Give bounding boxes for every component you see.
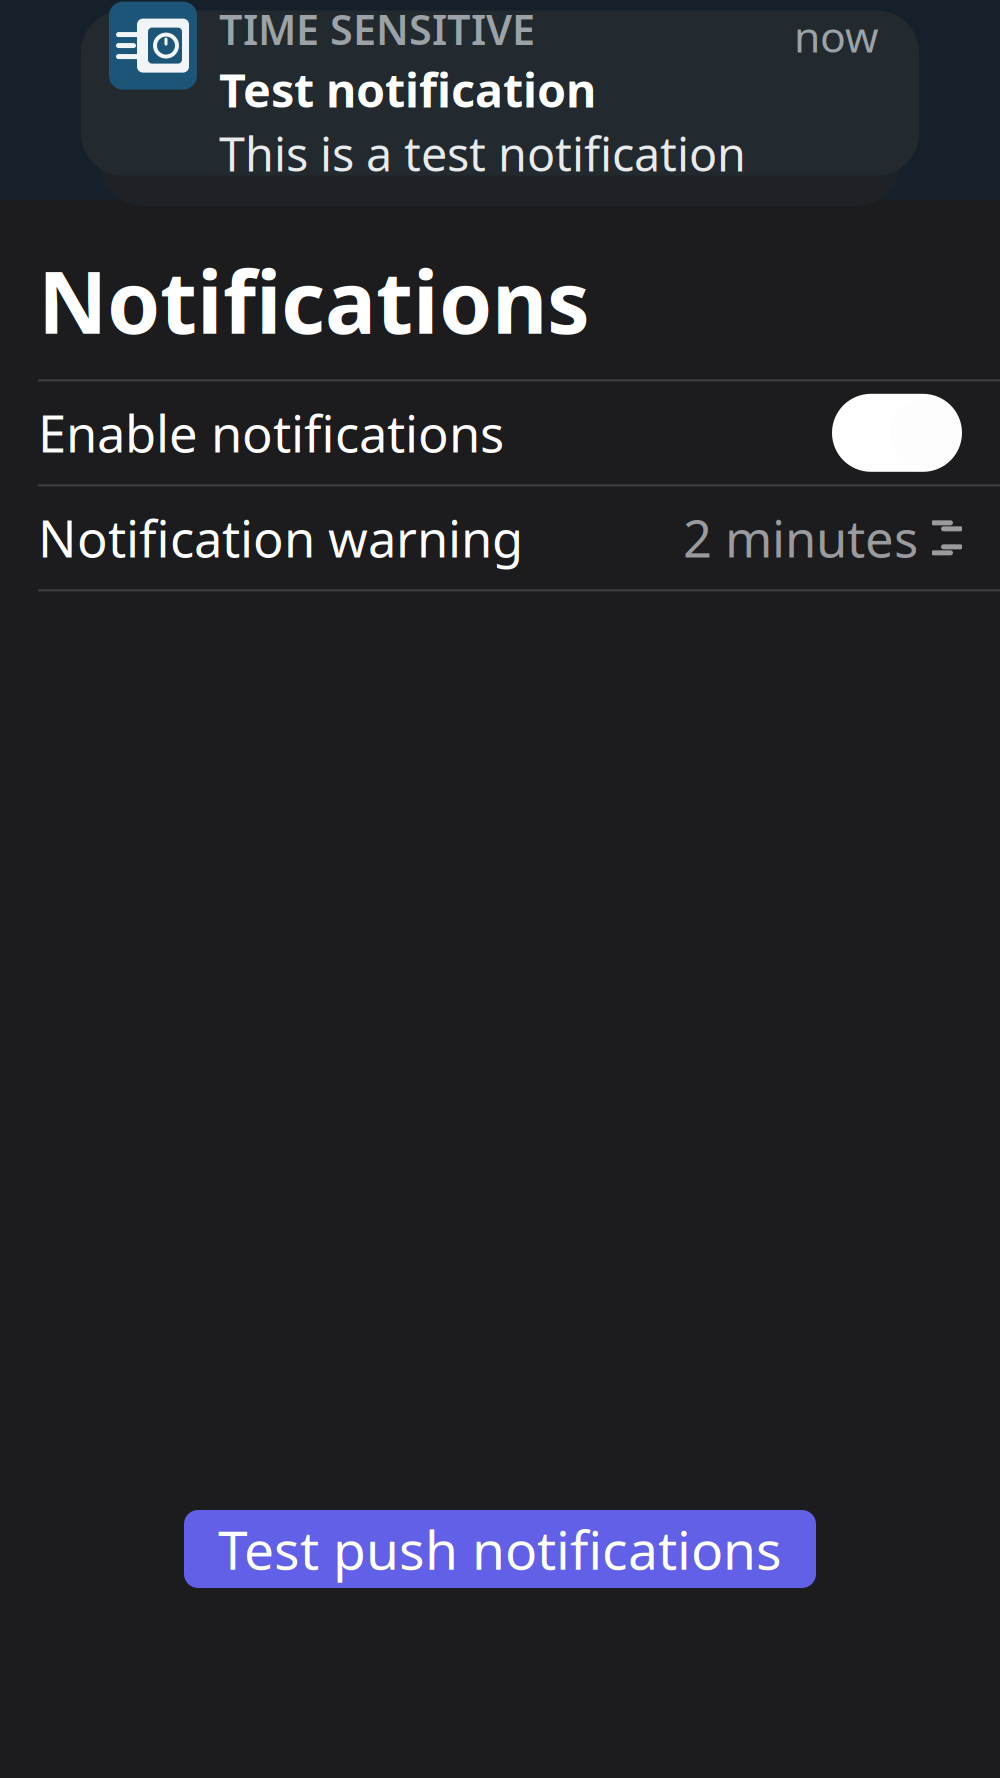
staticText: TIME SENSITIVE	[219, 2, 535, 56]
button[interactable]: Test push notifications	[184, 1510, 816, 1588]
button[interactable]: Notification warning	[0, 486, 1000, 589]
staticText: now	[794, 8, 879, 64]
staticText: This is a test notification	[219, 122, 746, 184]
staticText: Test notification	[219, 58, 596, 120]
staticText: Test push notifications	[218, 1514, 782, 1584]
staticText: 2 minutes	[683, 504, 918, 571]
staticText: Enable notifications	[38, 399, 504, 466]
staticText: Notifications	[38, 244, 590, 357]
button[interactable]: Enable notifications	[0, 381, 1000, 484]
staticText: Notification warning	[38, 504, 523, 571]
